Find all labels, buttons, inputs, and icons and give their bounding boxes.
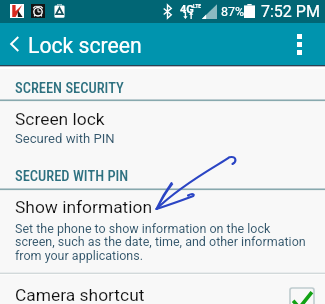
staticText: LTE [193,3,202,9]
staticText: 87% [221,4,245,19]
staticText: 7:52 PM [261,2,320,21]
button[interactable]: Camera shortcut checkbox [289,287,315,304]
staticText: Camera shortcut [15,285,145,304]
staticText: 4G [180,3,194,16]
staticText: Lock screen [28,33,142,58]
staticText: Show information [15,197,153,217]
button[interactable]: More options [283,23,317,65]
button[interactable]: Navigate up [0,23,28,65]
staticText: Secured with PIN [15,131,115,146]
staticText: SECURED WITH PIN [15,168,129,185]
button[interactable]: Show information [0,194,325,270]
staticText: SCREEN SECURITY [15,80,124,97]
button[interactable]: Camera shortcut [0,285,325,304]
staticText: Screen lock [15,109,105,129]
staticText: Set the phone to show information on the… [15,221,310,263]
button[interactable]: Screen lock [0,104,325,148]
